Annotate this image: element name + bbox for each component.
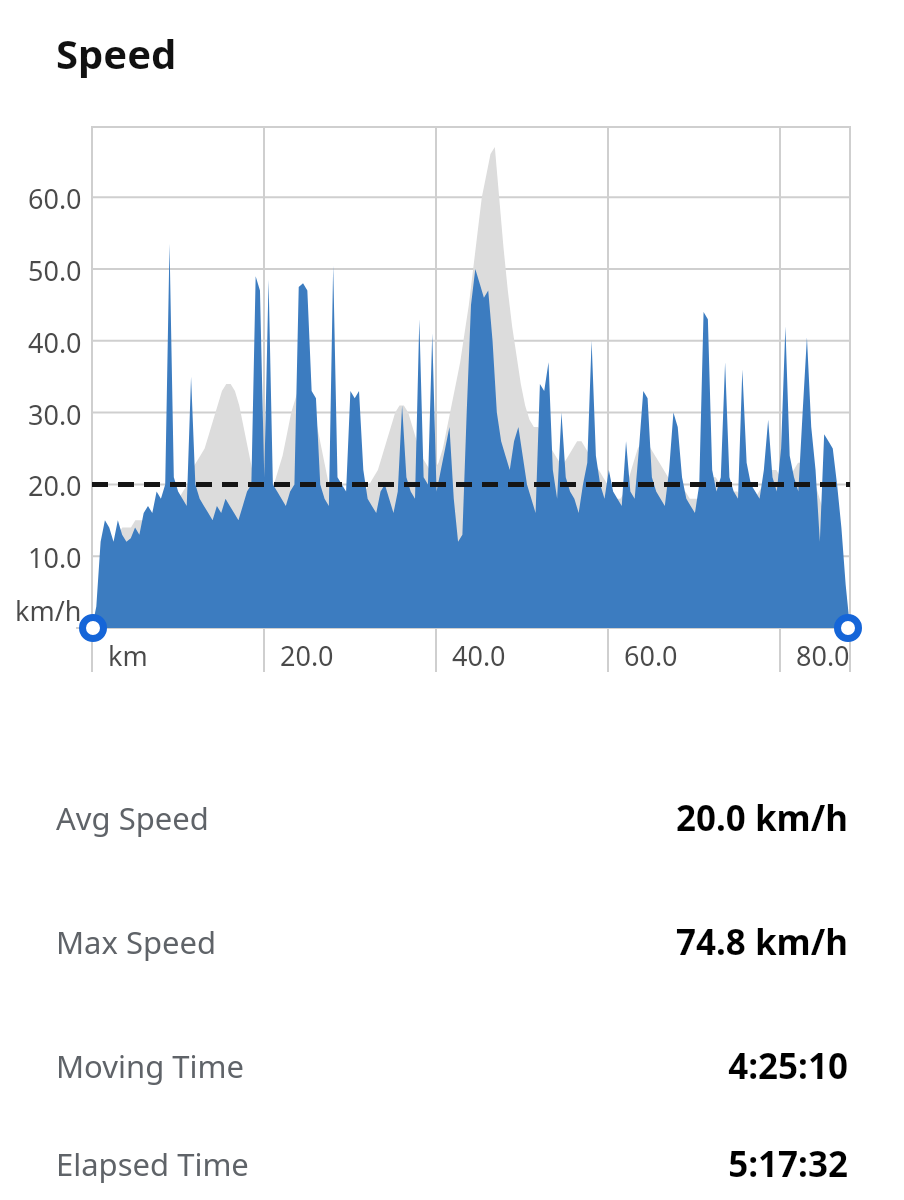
staticText: 74.8 km/h [675,918,848,966]
staticText: km [108,637,148,674]
button[interactable]: Moving Time [0,1004,904,1128]
staticText: 20.0 [280,637,334,674]
staticText: 4:25:10 [728,1042,848,1090]
staticText: 20.0 km/h [675,794,848,842]
staticText: 40.0 [28,324,82,361]
staticText: 10.0 [28,539,82,576]
staticText: 5:17:32 [728,1140,848,1188]
staticText: Elapsed Time [56,1143,249,1185]
staticText: 60.0 [28,180,82,217]
staticText: 80.0 [796,637,850,674]
staticText: 40.0 [452,637,506,674]
staticText: Max Speed [56,921,217,963]
staticText: 50.0 [28,252,82,289]
staticText: km/h [15,592,82,629]
staticText: Avg Speed [56,797,209,839]
button[interactable]: Avg Speed [0,756,904,880]
staticText: 60.0 [624,637,678,674]
staticText: Moving Time [56,1045,244,1087]
button[interactable]: Elapsed Time [0,1128,904,1200]
button[interactable]: Max Speed [0,880,904,1004]
staticText: Speed [56,26,177,80]
staticText: 30.0 [28,396,82,433]
staticText: 20.0 [28,467,82,504]
other: Speed chart [0,126,904,686]
